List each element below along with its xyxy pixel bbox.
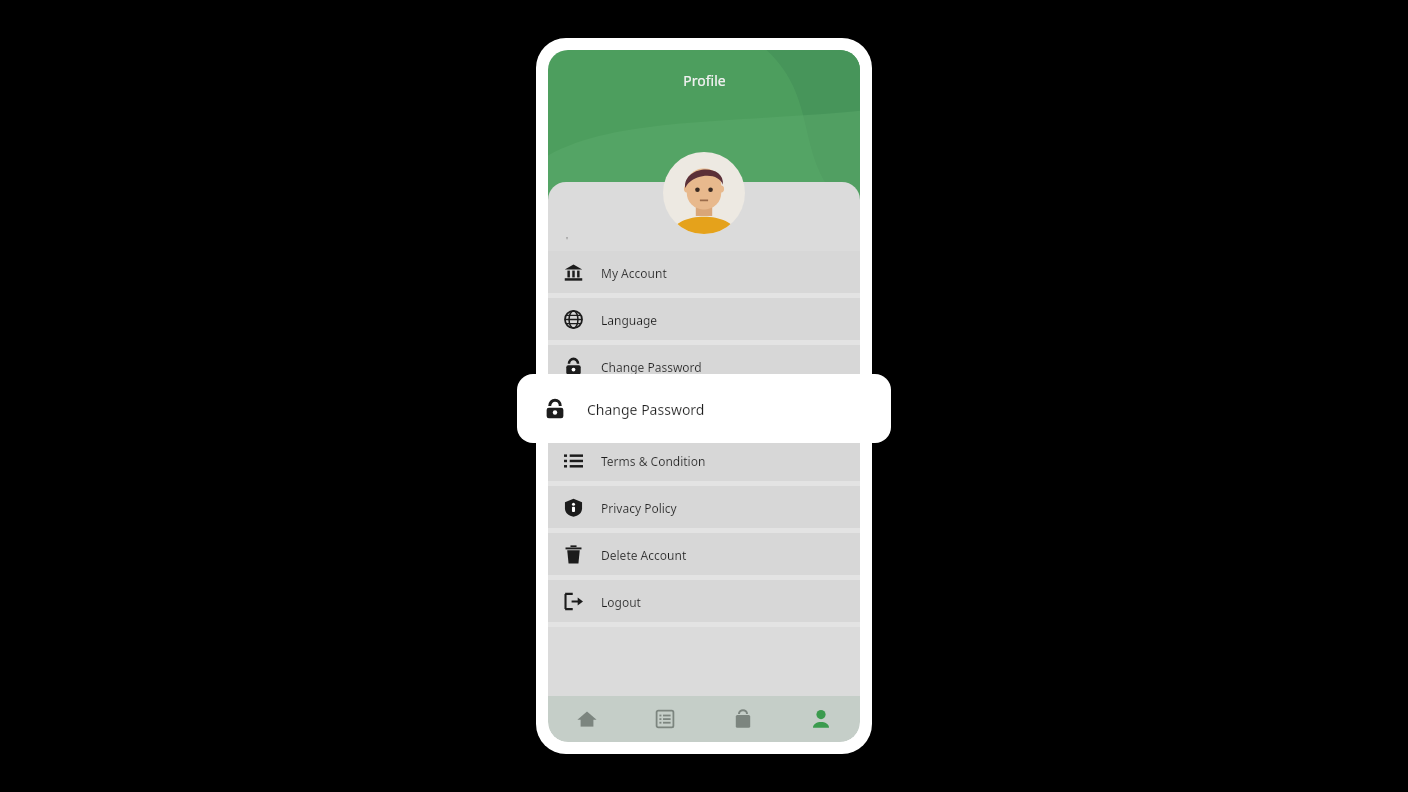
- button[interactable]: Change Password: [548, 345, 860, 387]
- button[interactable]: Home: [548, 696, 626, 742]
- button[interactable]: Language: [548, 298, 860, 340]
- button[interactable]: Profile photo: [663, 152, 745, 234]
- button[interactable]: Privacy Policy: [548, 486, 860, 528]
- staticText: Edit Profile: [601, 406, 662, 422]
- button[interactable]: My Account: [548, 251, 860, 293]
- button[interactable]: Delete Account: [548, 533, 860, 575]
- button[interactable]: Terms & Condition: [548, 439, 860, 481]
- button[interactable]: Profile: [782, 696, 860, 742]
- staticText: Change Password: [587, 400, 705, 419]
- staticText: Change Password: [601, 359, 702, 375]
- staticText: My Account: [601, 265, 667, 281]
- staticText: Logout: [601, 594, 641, 610]
- staticText: Language: [601, 312, 658, 328]
- button[interactable]: Shop: [704, 696, 782, 742]
- staticText: Delete Account: [601, 547, 687, 563]
- button[interactable]: Change Password: [517, 374, 891, 443]
- staticText: Terms & Condition: [601, 453, 706, 469]
- staticText: Profile: [683, 71, 726, 90]
- button[interactable]: Edit Profile: [548, 392, 860, 434]
- staticText: ': [566, 234, 569, 246]
- staticText: Privacy Policy: [601, 500, 677, 516]
- button[interactable]: Orders: [626, 696, 704, 742]
- button[interactable]: Logout: [548, 580, 860, 622]
